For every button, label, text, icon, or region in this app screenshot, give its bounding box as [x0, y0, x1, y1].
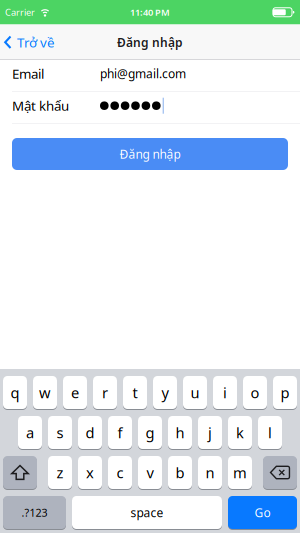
button[interactable]: e	[63, 376, 87, 409]
button[interactable]: m	[228, 456, 252, 489]
staticText: f	[117, 423, 122, 442]
staticText: Go	[254, 504, 270, 520]
button[interactable]: Email	[0, 60, 300, 92]
staticText: Carrier	[5, 6, 35, 18]
staticText: x	[86, 463, 94, 482]
button[interactable]: p	[273, 376, 297, 409]
staticText: Mật khẩu	[12, 97, 69, 114]
button[interactable]: y	[153, 376, 177, 409]
button[interactable]: n	[198, 456, 222, 489]
button[interactable]: i	[213, 376, 237, 409]
staticText: d	[85, 423, 94, 442]
button[interactable]: o	[243, 376, 267, 409]
staticText: y	[161, 383, 168, 402]
staticText: t	[132, 383, 137, 402]
staticText: b	[175, 463, 184, 482]
staticText: c	[116, 463, 123, 482]
staticText: Trở về	[17, 33, 55, 51]
staticText: o	[250, 383, 259, 402]
button[interactable]: z	[48, 456, 72, 489]
staticText: phi@gmail.com	[100, 66, 186, 82]
staticText: Đăng nhập	[119, 146, 180, 162]
button[interactable]: g	[138, 416, 162, 449]
staticText: p	[280, 383, 289, 402]
staticText: r	[102, 383, 108, 402]
button[interactable]: k	[228, 416, 252, 449]
staticText: w	[39, 383, 51, 402]
button[interactable]: q	[3, 376, 27, 409]
button[interactable]: a	[18, 416, 42, 449]
staticText: a	[26, 423, 34, 442]
staticText: j	[208, 423, 212, 442]
button[interactable]: c	[108, 456, 132, 489]
button[interactable]: r	[93, 376, 117, 409]
button[interactable]: Go	[228, 496, 297, 529]
button[interactable]: Shift	[3, 456, 37, 489]
staticText: v	[146, 463, 153, 482]
staticText: .?123	[21, 505, 47, 520]
staticText: l	[268, 423, 272, 442]
button[interactable]: f	[108, 416, 132, 449]
staticText: n	[205, 463, 214, 482]
button[interactable]: x	[78, 456, 102, 489]
staticText: 11:40 PM	[130, 6, 170, 18]
button[interactable]: j	[198, 416, 222, 449]
staticText: u	[190, 383, 199, 402]
button[interactable]: u	[183, 376, 207, 409]
staticText: i	[223, 383, 227, 402]
button[interactable]: .?123	[3, 496, 66, 529]
staticText: h	[175, 423, 184, 442]
button[interactable]: Delete	[263, 456, 297, 489]
staticText: e	[71, 383, 79, 402]
staticText: g	[145, 423, 154, 442]
button[interactable]: Trở về	[0, 33, 55, 51]
button[interactable]: Đăng nhập	[12, 138, 288, 170]
staticText: Đăng nhập	[117, 34, 183, 50]
button[interactable]: h	[168, 416, 192, 449]
button[interactable]: t	[123, 376, 147, 409]
staticText: space	[130, 504, 163, 520]
button[interactable]: l	[258, 416, 282, 449]
button[interactable]: d	[78, 416, 102, 449]
button[interactable]: space	[72, 496, 222, 529]
staticText: s	[56, 423, 63, 442]
button[interactable]: Mật khẩu	[0, 92, 300, 124]
button[interactable]: w	[33, 376, 57, 409]
staticText: q	[10, 383, 19, 402]
staticText: z	[56, 463, 63, 482]
button[interactable]: s	[48, 416, 72, 449]
staticText: m	[233, 463, 247, 482]
button[interactable]: v	[138, 456, 162, 489]
button[interactable]: b	[168, 456, 192, 489]
staticText: k	[236, 423, 244, 442]
staticText: Email	[12, 65, 44, 82]
